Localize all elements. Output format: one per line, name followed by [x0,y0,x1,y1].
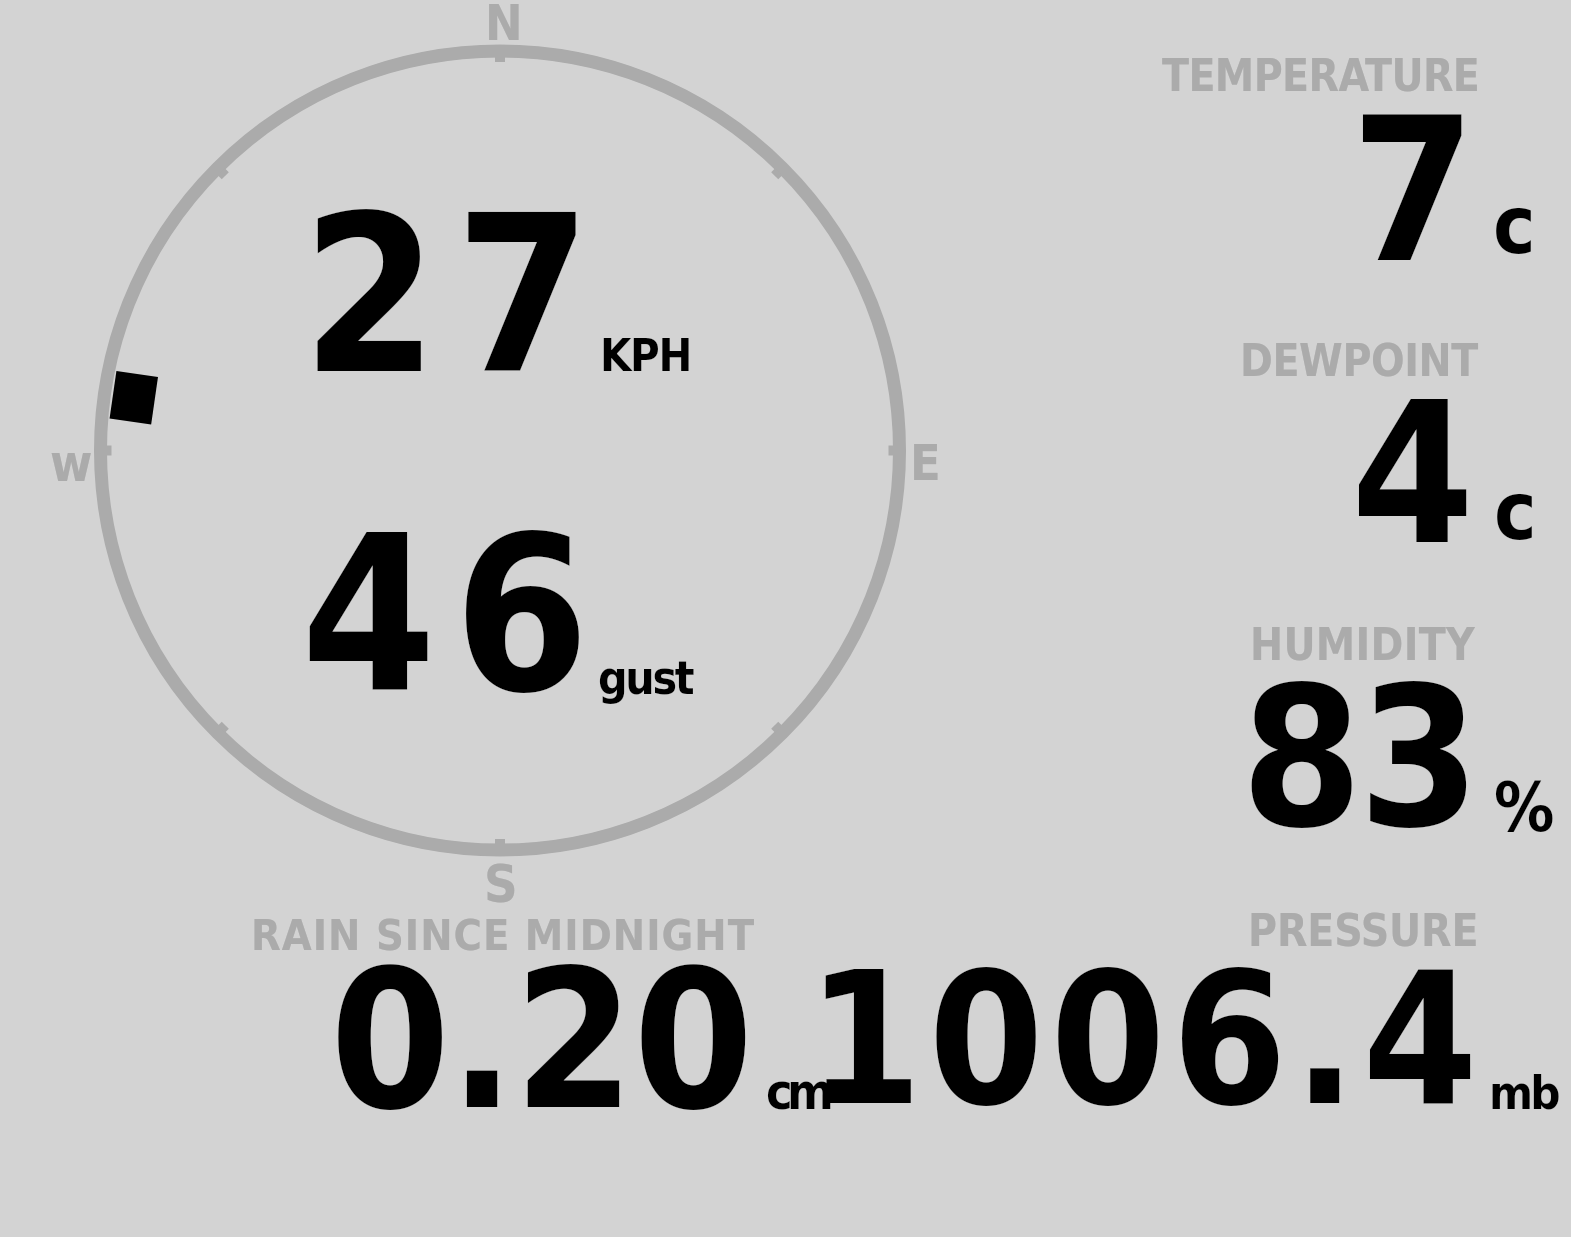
staticText: TEMPERATURE [1162,50,1480,101]
staticText: c [1494,465,1537,558]
staticText: E [910,434,941,492]
staticText: cm [766,1063,829,1121]
staticText: N [485,0,523,52]
staticText: w [50,434,93,493]
staticText: gust [598,651,693,705]
staticText: 0.20 [330,929,753,1153]
staticText: % [1494,769,1555,847]
staticText: c [1493,179,1536,272]
staticText: HUMIDITY [1250,619,1476,670]
staticText: 4 [1351,359,1475,588]
staticText: 1006.4 [807,932,1485,1146]
staticText: mb [1489,1065,1558,1120]
staticText: 46 [301,490,607,741]
staticText: S [484,854,518,915]
staticText: RAIN SINCE MIDNIGHT [251,910,756,960]
staticText: KPH [600,329,692,381]
staticText: 27 [302,170,609,423]
staticText: 7 [1351,75,1476,307]
staticText: DEWPOINT [1240,335,1478,386]
staticText: 83 [1241,645,1476,871]
staticText: PRESSURE [1248,905,1479,956]
